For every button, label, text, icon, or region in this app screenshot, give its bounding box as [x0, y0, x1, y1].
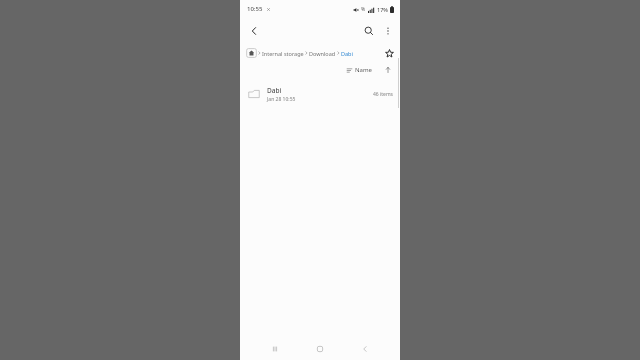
button[interactable]: Dabi: [341, 50, 353, 57]
button[interactable]: Back: [244, 21, 264, 41]
staticText: Name: [355, 66, 372, 74]
staticText: 46 items: [372, 91, 393, 98]
staticText: Jan 28 10:55: [267, 96, 296, 103]
button[interactable]: Dabi: [240, 82, 400, 106]
button[interactable]: Download: [309, 50, 336, 57]
button[interactable]: Home storage: [246, 48, 257, 58]
button[interactable]: Add to favorites: [382, 46, 396, 60]
button[interactable]: Sort ascending: [382, 64, 394, 76]
staticText: 10:55: [247, 5, 263, 13]
staticText: %: [361, 6, 366, 13]
staticText: Dabi: [267, 86, 282, 95]
button[interactable]: More options: [379, 22, 397, 40]
button[interactable]: Recent apps: [265, 339, 285, 359]
button[interactable]: Name: [346, 66, 372, 74]
button[interactable]: Home: [310, 339, 330, 359]
button[interactable]: Search: [359, 21, 379, 41]
button[interactable]: Internal storage: [262, 50, 304, 57]
staticText: 17%: [377, 6, 388, 13]
button[interactable]: Back: [355, 339, 375, 359]
